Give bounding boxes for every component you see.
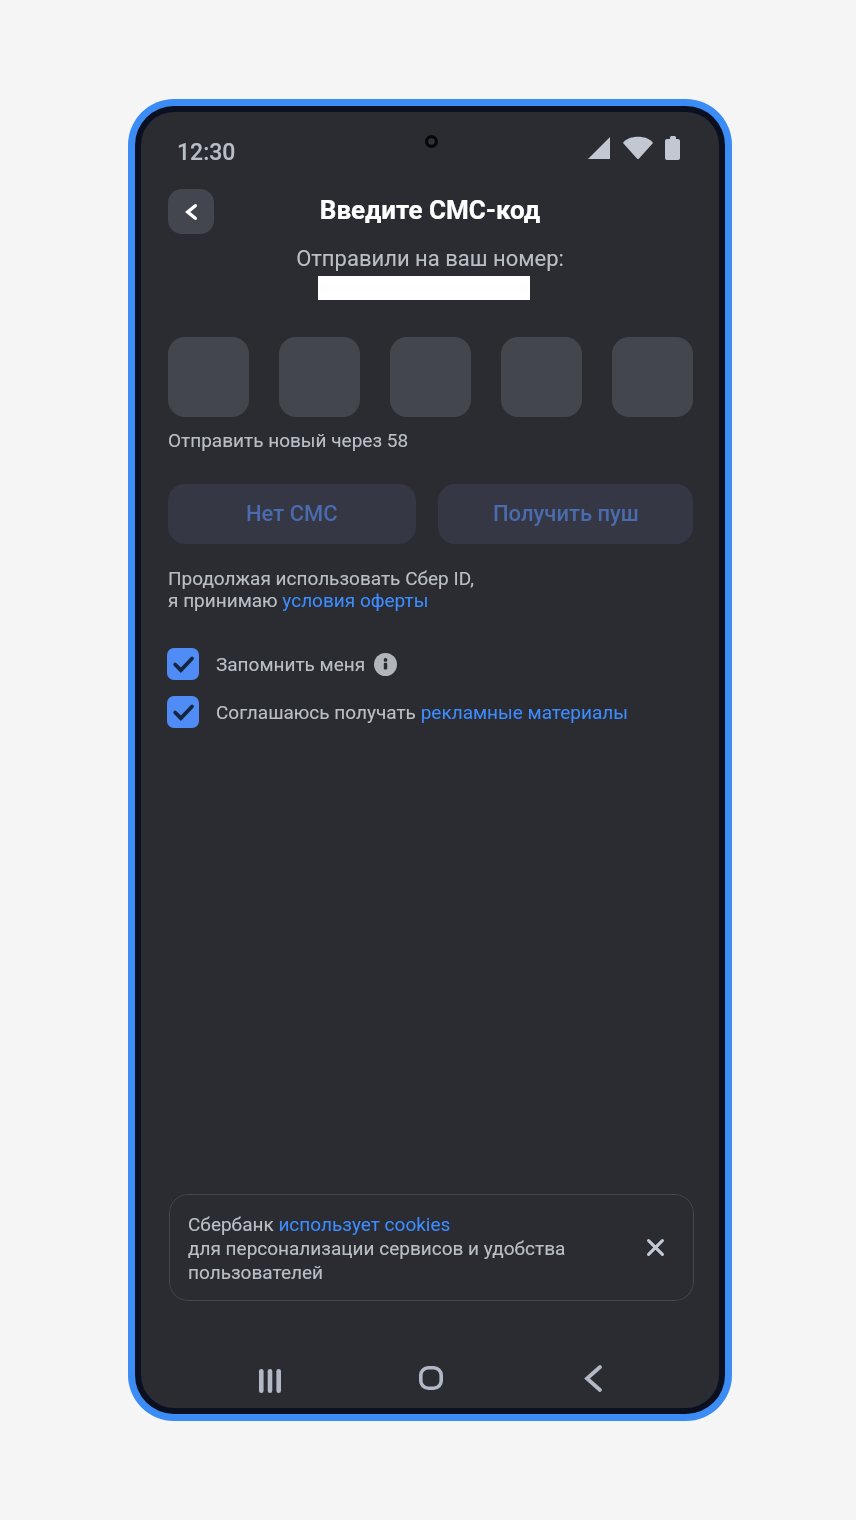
- button[interactable]: Поле кода: [390, 337, 471, 417]
- button[interactable]: Последние приложения: [240, 1351, 300, 1408]
- button[interactable]: Получить пуш: [438, 484, 693, 544]
- staticText: Продолжая использовать Сбер ID,: [168, 567, 474, 589]
- button[interactable]: Запомнить меня: [167, 648, 397, 680]
- staticText: Запомнить меня: [216, 653, 366, 675]
- staticText: пользователей: [188, 1261, 323, 1283]
- button[interactable]: Закрыть: [638, 1230, 672, 1264]
- button[interactable]: Подробнее: [374, 653, 397, 676]
- button[interactable]: Поле кода: [612, 337, 693, 417]
- button[interactable]: Нет СМС: [168, 484, 416, 544]
- button[interactable]: Соглашаюсь получать рекламные материалы: [167, 696, 629, 728]
- staticText: Нет СМС: [246, 501, 338, 527]
- button[interactable]: я принимаю условия оферты: [168, 589, 429, 611]
- button[interactable]: Поле кода: [501, 337, 582, 417]
- button[interactable]: Поле кода: [168, 337, 249, 417]
- staticText: Получить пуш: [493, 501, 639, 527]
- staticText: 12:30: [177, 139, 236, 166]
- button[interactable]: Поле кода: [279, 337, 360, 417]
- staticText: Сбербанк использует cookies: [188, 1213, 451, 1235]
- button[interactable]: Домой: [401, 1348, 461, 1408]
- button[interactable]: Назад: [563, 1348, 623, 1408]
- staticText: Соглашаюсь получать рекламные материалы: [216, 701, 629, 723]
- staticText: Отправить новый через 58: [168, 429, 409, 451]
- staticText: для персонализации сервисов и удобства: [188, 1237, 566, 1259]
- staticText: Отправили на ваш номер:: [141, 246, 719, 272]
- staticText: Введите СМС-код: [141, 195, 719, 225]
- button[interactable]: Назад: [168, 189, 214, 234]
